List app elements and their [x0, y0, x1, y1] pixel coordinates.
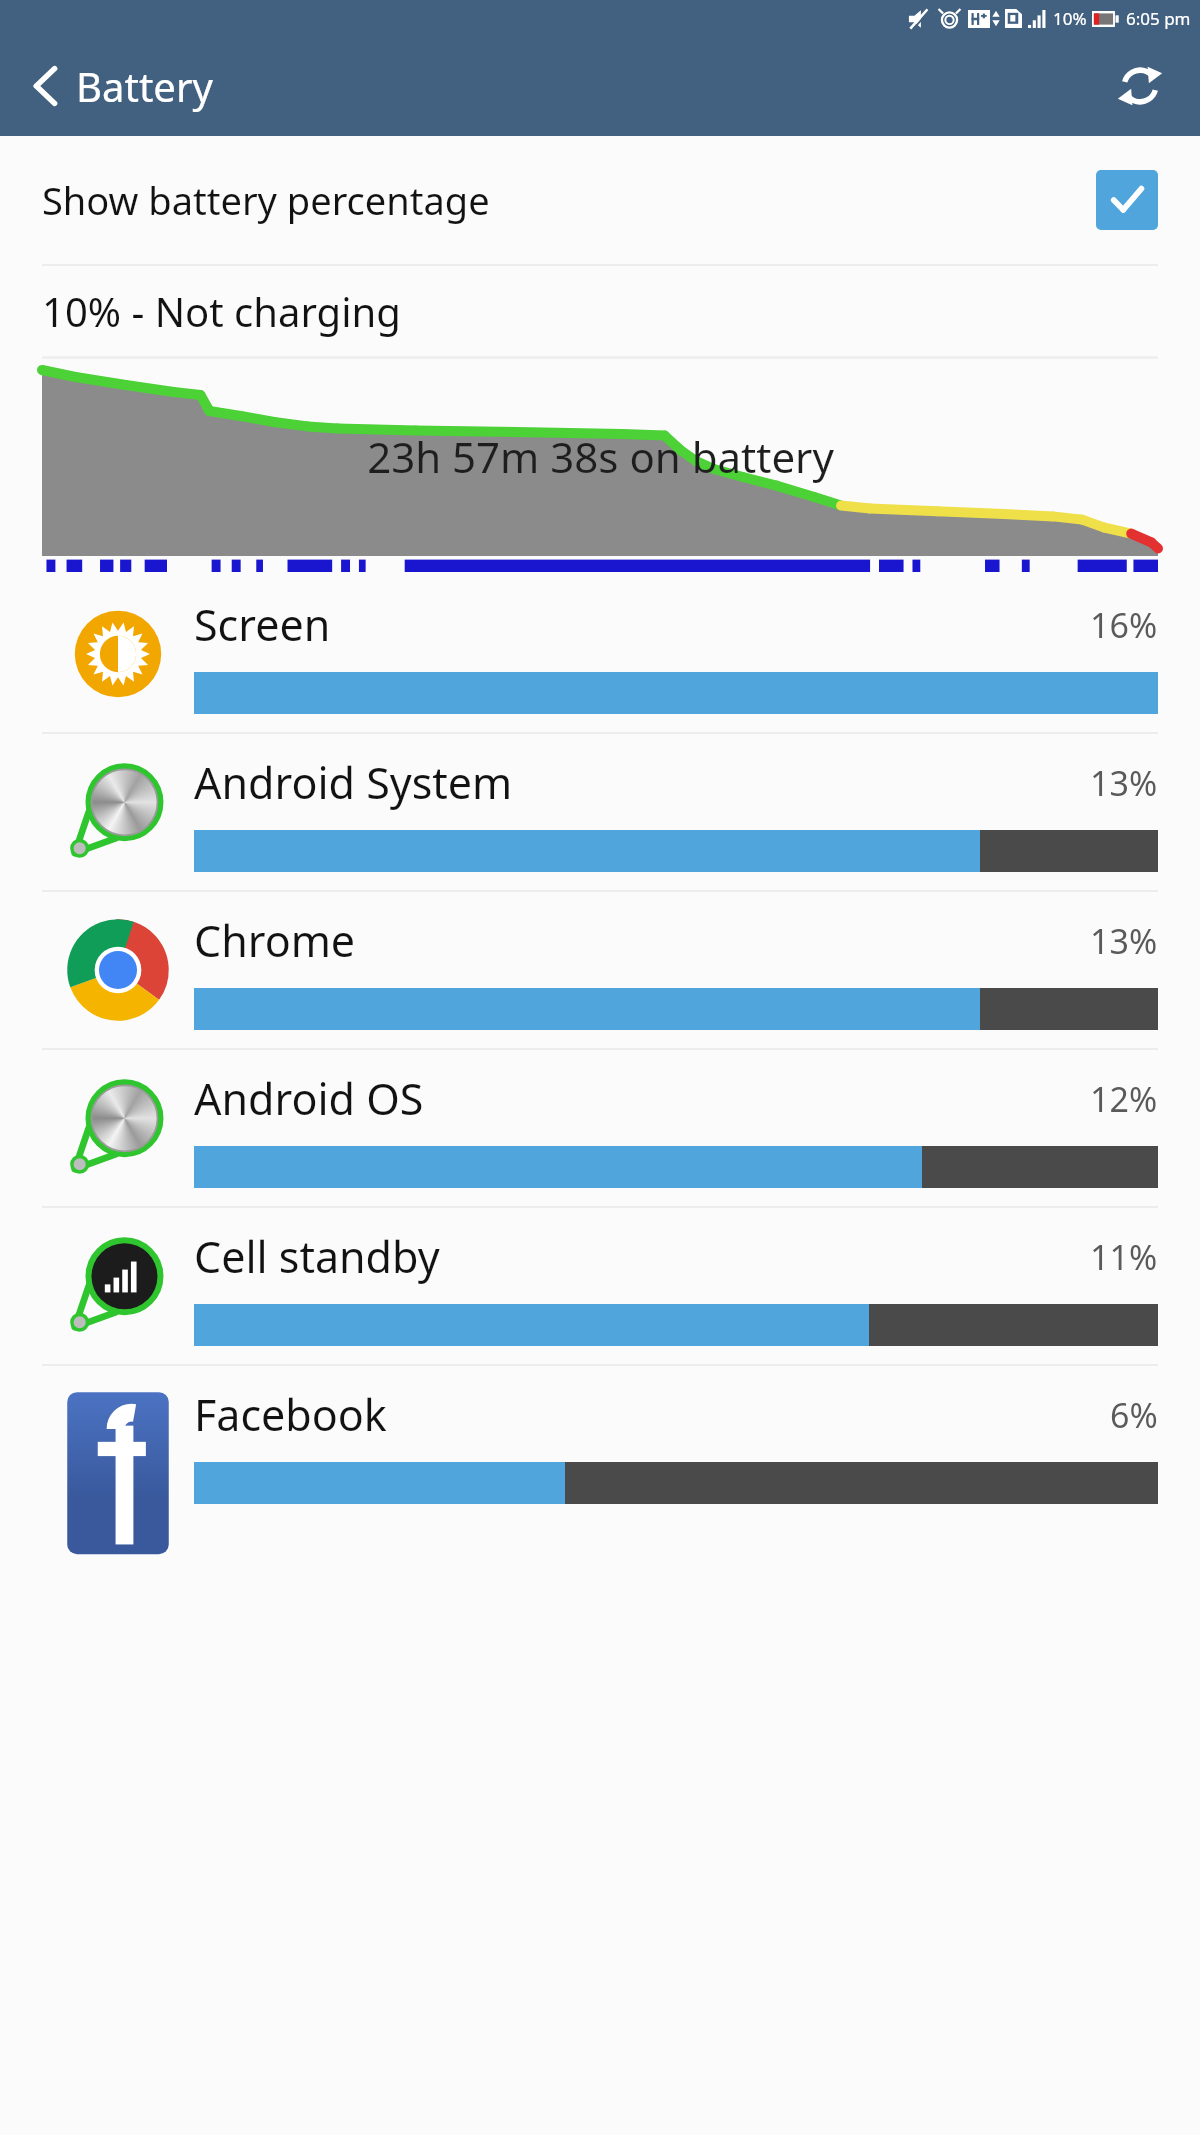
staticText: 12%: [1090, 1076, 1158, 1122]
staticText: Battery: [76, 59, 213, 113]
button[interactable]: Facebook: [0, 1366, 1200, 1522]
staticText: 23h 57m 38s on battery: [367, 428, 834, 485]
staticText: Show battery percentage: [42, 174, 490, 226]
button[interactable]: Android System: [0, 734, 1200, 890]
button[interactable]: Refresh: [1104, 50, 1176, 122]
staticText: 16%: [1090, 602, 1158, 648]
staticText: Android OS: [194, 1069, 424, 1128]
staticText: 10% - Not charging: [42, 284, 401, 338]
staticText: 6%: [1110, 1392, 1158, 1438]
staticText: Chrome: [194, 911, 356, 970]
staticText: Android System: [194, 753, 513, 812]
button[interactable]: Show battery percentage: [0, 136, 1200, 264]
button[interactable]: Back: [0, 51, 235, 121]
button[interactable]: Cell standby: [0, 1208, 1200, 1364]
staticText: 13%: [1090, 760, 1158, 806]
staticText: 10%: [1053, 7, 1087, 30]
other: Back: [32, 63, 59, 109]
staticText: 11%: [1090, 1234, 1158, 1280]
button[interactable]: Screen: [0, 576, 1200, 732]
button[interactable]: Chrome: [0, 892, 1200, 1048]
staticText: Cell standby: [194, 1227, 440, 1286]
staticText: Facebook: [194, 1385, 387, 1444]
staticText: 6:05 pm: [1126, 7, 1191, 30]
button[interactable]: Android OS: [0, 1050, 1200, 1206]
staticText: Screen: [194, 595, 331, 654]
staticText: 13%: [1090, 918, 1158, 964]
